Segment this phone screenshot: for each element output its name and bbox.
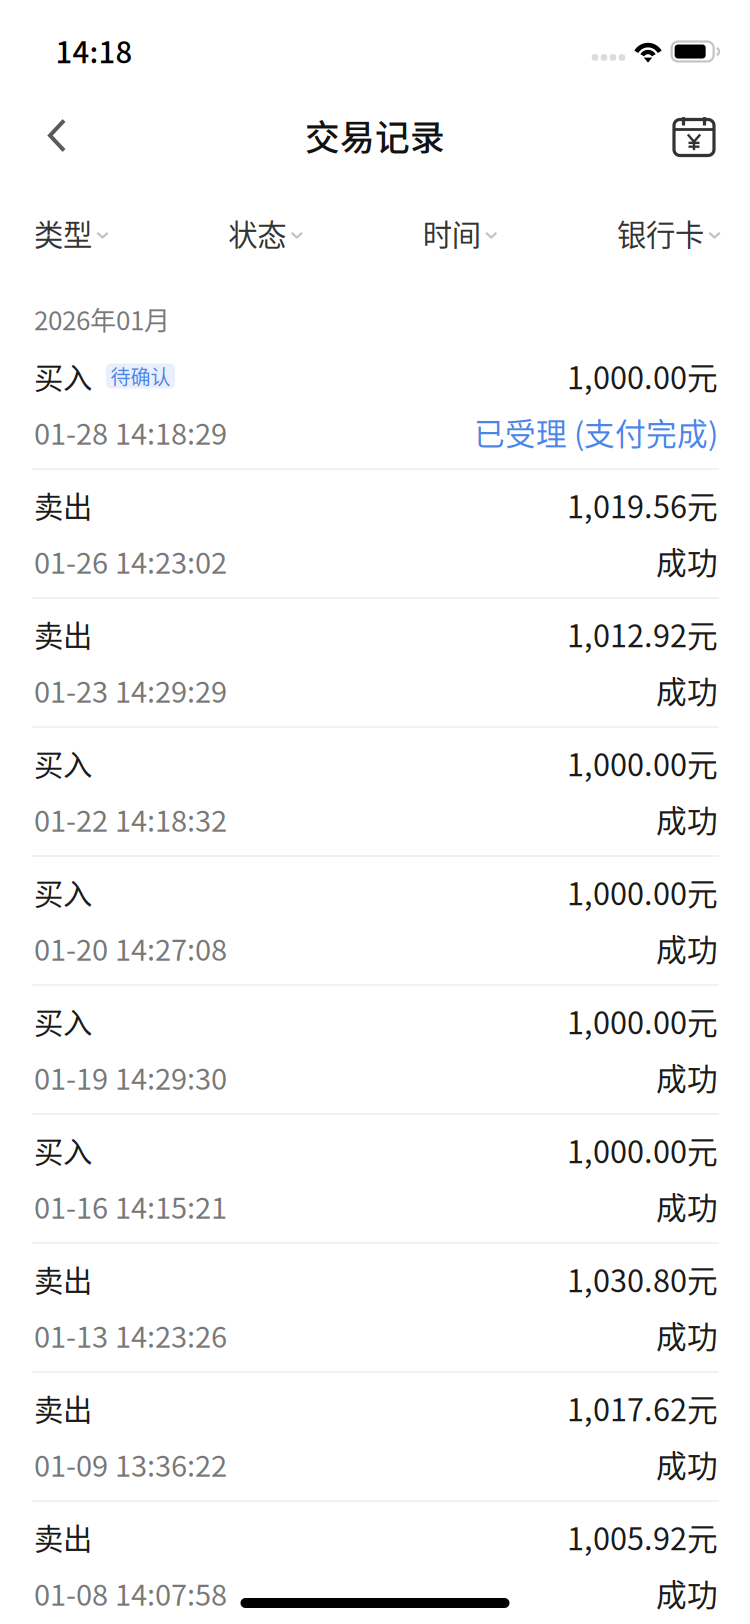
staticText: 类型 <box>34 212 92 254</box>
staticText: 01-28 14:18:29 <box>34 411 227 453</box>
button[interactable]: 状态 <box>228 175 303 291</box>
staticText: 01-26 14:23:02 <box>34 540 227 582</box>
staticText: 01-22 14:18:32 <box>34 798 227 840</box>
button[interactable]: 类型 <box>34 175 109 291</box>
staticText: 买入 <box>34 871 92 913</box>
button[interactable]: 买入 <box>0 1114 750 1243</box>
staticText: 2026年01月 <box>34 300 170 338</box>
staticText: 成功 <box>656 1442 718 1486</box>
staticText: 卖出 <box>34 1516 92 1558</box>
staticText: 时间 <box>423 212 481 254</box>
staticText: 1,030.80元 <box>567 1257 718 1301</box>
staticText: 成功 <box>656 539 718 583</box>
button[interactable]: 买入 <box>0 856 750 985</box>
staticText: 卖出 <box>34 484 92 526</box>
staticText: 卖出 <box>34 613 92 655</box>
button[interactable]: 买入 <box>0 727 750 856</box>
staticText: 01-16 14:15:21 <box>34 1185 227 1227</box>
staticText: 交易记录 <box>305 110 445 161</box>
button[interactable]: 按月份筛选 <box>656 98 732 172</box>
button[interactable]: 卖出 <box>0 469 750 598</box>
staticText: 1,000.00元 <box>567 999 718 1043</box>
staticText: 银行卡 <box>617 212 704 254</box>
button[interactable]: 时间 <box>423 175 498 291</box>
staticText: 买入 <box>34 1000 92 1042</box>
staticText: 01-08 14:07:58 <box>34 1572 227 1614</box>
staticText: 成功 <box>656 1184 718 1228</box>
staticText: 卖出 <box>34 1258 92 1300</box>
button[interactable]: 返回 <box>19 98 95 172</box>
staticText: 买入 <box>34 355 92 397</box>
staticText: 01-13 14:23:26 <box>34 1314 227 1356</box>
button[interactable]: 卖出 <box>0 1372 750 1501</box>
staticText: 1,000.00元 <box>567 741 718 785</box>
staticText: 已受理 (支付完成) <box>474 410 718 454</box>
staticText: 1,000.00元 <box>567 870 718 914</box>
staticText: 买入 <box>34 1129 92 1171</box>
staticText: 1,000.00元 <box>567 1128 718 1172</box>
button[interactable]: 卖出 <box>0 1243 750 1372</box>
staticText: 成功 <box>656 797 718 841</box>
staticText: 待确认 <box>110 361 170 390</box>
staticText: 买入 <box>34 742 92 784</box>
button[interactable]: 买入 <box>0 985 750 1114</box>
button[interactable]: 买入 <box>0 340 750 469</box>
staticText: 01-19 14:29:30 <box>34 1056 227 1098</box>
staticText: 成功 <box>656 1055 718 1099</box>
staticText: 成功 <box>656 926 718 970</box>
staticText: 14:18 <box>55 29 132 72</box>
button[interactable]: 卖出 <box>0 1501 750 1624</box>
staticText: 状态 <box>228 212 286 254</box>
staticText: 1,012.92元 <box>567 612 718 656</box>
staticText: 1,000.00元 <box>567 354 718 398</box>
staticText: 1,019.56元 <box>567 483 718 527</box>
staticText: 成功 <box>656 1313 718 1357</box>
staticText: 成功 <box>656 668 718 712</box>
staticText: 1,005.92元 <box>567 1515 718 1559</box>
button[interactable]: 银行卡 <box>617 175 721 291</box>
staticText: 01-23 14:29:29 <box>34 669 227 711</box>
staticText: 01-20 14:27:08 <box>34 927 227 969</box>
staticText: 01-09 13:36:22 <box>34 1443 227 1485</box>
button[interactable]: 卖出 <box>0 598 750 727</box>
staticText: 1,017.62元 <box>567 1386 718 1430</box>
staticText: 卖出 <box>34 1387 92 1429</box>
staticText: 成功 <box>656 1571 718 1615</box>
